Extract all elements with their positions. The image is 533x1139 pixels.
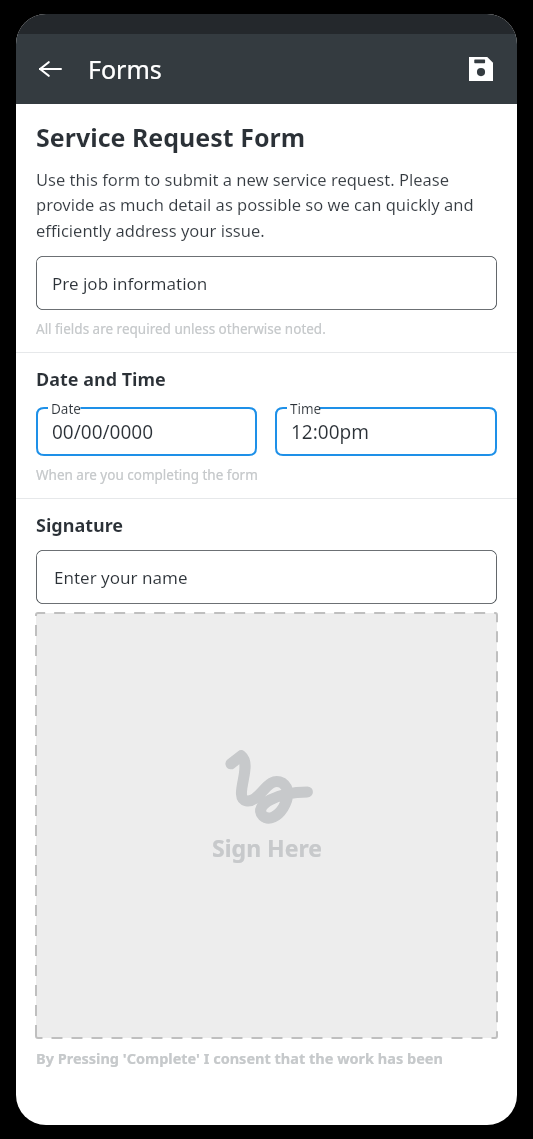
staticText: Forms xyxy=(88,52,162,86)
button[interactable]: Date xyxy=(36,400,257,456)
button[interactable]: Time xyxy=(275,400,497,456)
staticText: All fields are required unless otherwise… xyxy=(36,320,326,338)
staticText: 12:00pm xyxy=(291,419,370,445)
staticText: Enter your name xyxy=(54,566,188,589)
button[interactable]: Back xyxy=(26,45,74,93)
staticText: Sign Here xyxy=(212,832,322,863)
button[interactable]: Pre job information xyxy=(36,256,497,310)
staticText: Service Request Form xyxy=(36,120,306,154)
staticText: Use this form to submit a new service re… xyxy=(36,168,497,242)
staticText: By Pressing 'Complete' I consent that th… xyxy=(36,1048,443,1068)
staticText: Signature xyxy=(36,513,124,538)
button[interactable]: Sign here xyxy=(36,613,497,1038)
staticText: Time xyxy=(290,400,322,418)
staticText: Date xyxy=(51,400,81,418)
button[interactable]: Save xyxy=(459,47,503,91)
staticText: Date and Time xyxy=(36,367,166,392)
staticText: When are you completing the form xyxy=(36,466,258,484)
button[interactable]: Enter your name xyxy=(36,550,497,604)
staticText: Pre job information xyxy=(52,272,208,295)
staticText: 00/00/0000 xyxy=(52,419,154,445)
